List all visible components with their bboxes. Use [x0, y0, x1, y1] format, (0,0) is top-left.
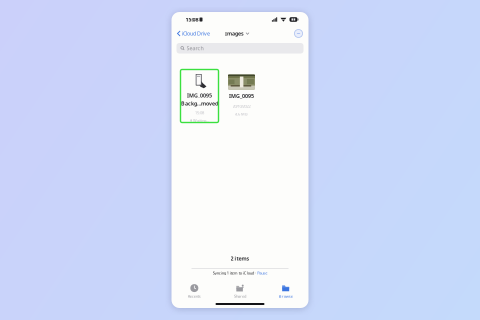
staticText: Syncing 1 item to iCloud ·: [213, 270, 256, 275]
staticText: 20/10/2022: [232, 104, 250, 109]
staticText: 15:08: [195, 110, 204, 115]
button[interactable]: IMG_0095: [180, 69, 218, 122]
staticText: Backg…moved: [181, 100, 218, 107]
button[interactable]: Recents: [171, 279, 217, 299]
staticText: 15:08: [185, 16, 198, 23]
staticText: iCloud Drive: [182, 30, 210, 37]
button[interactable]: Shared: [217, 279, 263, 299]
staticText: 4.6 MB: [235, 111, 248, 117]
staticText: Shared: [234, 294, 246, 299]
staticText: Pause: [257, 270, 267, 275]
staticText: Browse: [279, 294, 293, 299]
button[interactable]: Search: [176, 43, 303, 53]
staticText: IMG_0095: [187, 92, 212, 99]
staticText: Search: [186, 45, 203, 52]
button[interactable]: More options: [292, 27, 304, 39]
staticText: Recents: [188, 294, 201, 299]
button[interactable]: iCloud Drive: [177, 28, 210, 39]
staticText: Waiting…: [193, 118, 209, 123]
button[interactable]: Pause: [257, 270, 267, 275]
button[interactable]: IMG_0095: [226, 69, 256, 122]
staticText: IMG_0095: [229, 92, 254, 100]
button[interactable]: Browse: [263, 279, 308, 299]
button[interactable]: Images: [225, 28, 249, 39]
staticText: 2 items: [230, 255, 249, 262]
staticText: Images: [225, 30, 244, 37]
